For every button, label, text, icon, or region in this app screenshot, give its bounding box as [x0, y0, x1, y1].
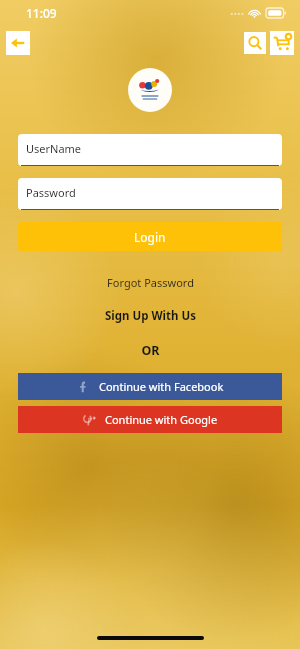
button[interactable]: Cart: [270, 31, 294, 55]
staticText: Password: [26, 185, 76, 200]
button[interactable]: Continue with Google: [18, 406, 282, 433]
staticText: 11:09: [26, 5, 57, 21]
staticText: Login: [134, 229, 166, 245]
button[interactable]: Back: [6, 31, 30, 55]
button[interactable]: Password: [18, 178, 282, 210]
staticText: Continue with Google: [105, 412, 218, 427]
staticText: Continue with Facebook: [99, 379, 224, 394]
button[interactable]: OR: [131, 340, 170, 361]
button[interactable]: UserName: [18, 134, 282, 166]
button[interactable]: Continue with Facebook: [18, 373, 282, 400]
button[interactable]: Forgot Password: [97, 273, 204, 292]
button[interactable]: Sign Up With Us: [95, 306, 206, 326]
staticText: UserName: [26, 141, 82, 156]
button[interactable]: Login: [18, 222, 282, 251]
button[interactable]: Search: [244, 32, 266, 54]
